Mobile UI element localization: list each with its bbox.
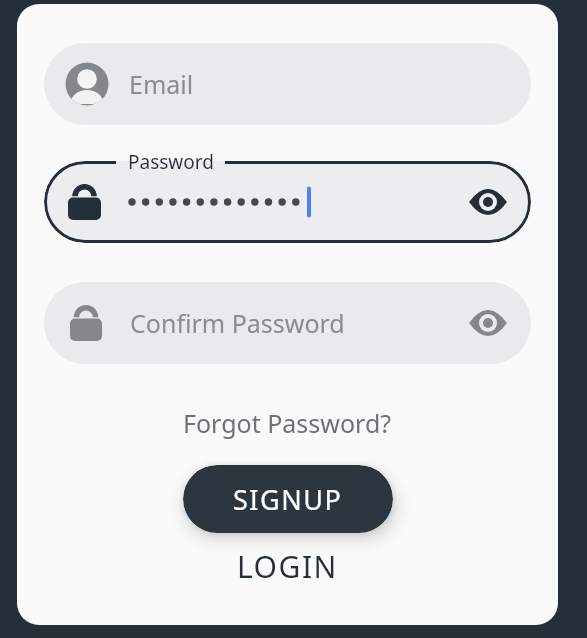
staticText: LOGIN	[237, 546, 338, 587]
staticText: Password	[128, 149, 214, 173]
staticText: Email	[129, 67, 194, 101]
staticText: Forgot Password?	[183, 406, 392, 440]
button[interactable]: Email	[44, 43, 531, 125]
button[interactable]: Confirm Password	[44, 282, 531, 364]
button[interactable]: LOGIN	[237, 545, 338, 587]
staticText: SIGNUP	[233, 481, 343, 518]
staticText: Confirm Password	[130, 306, 345, 340]
button[interactable]: Forgot Password?	[183, 406, 392, 440]
button[interactable]	[44, 161, 531, 243]
button[interactable]: SIGNUP	[183, 465, 393, 533]
